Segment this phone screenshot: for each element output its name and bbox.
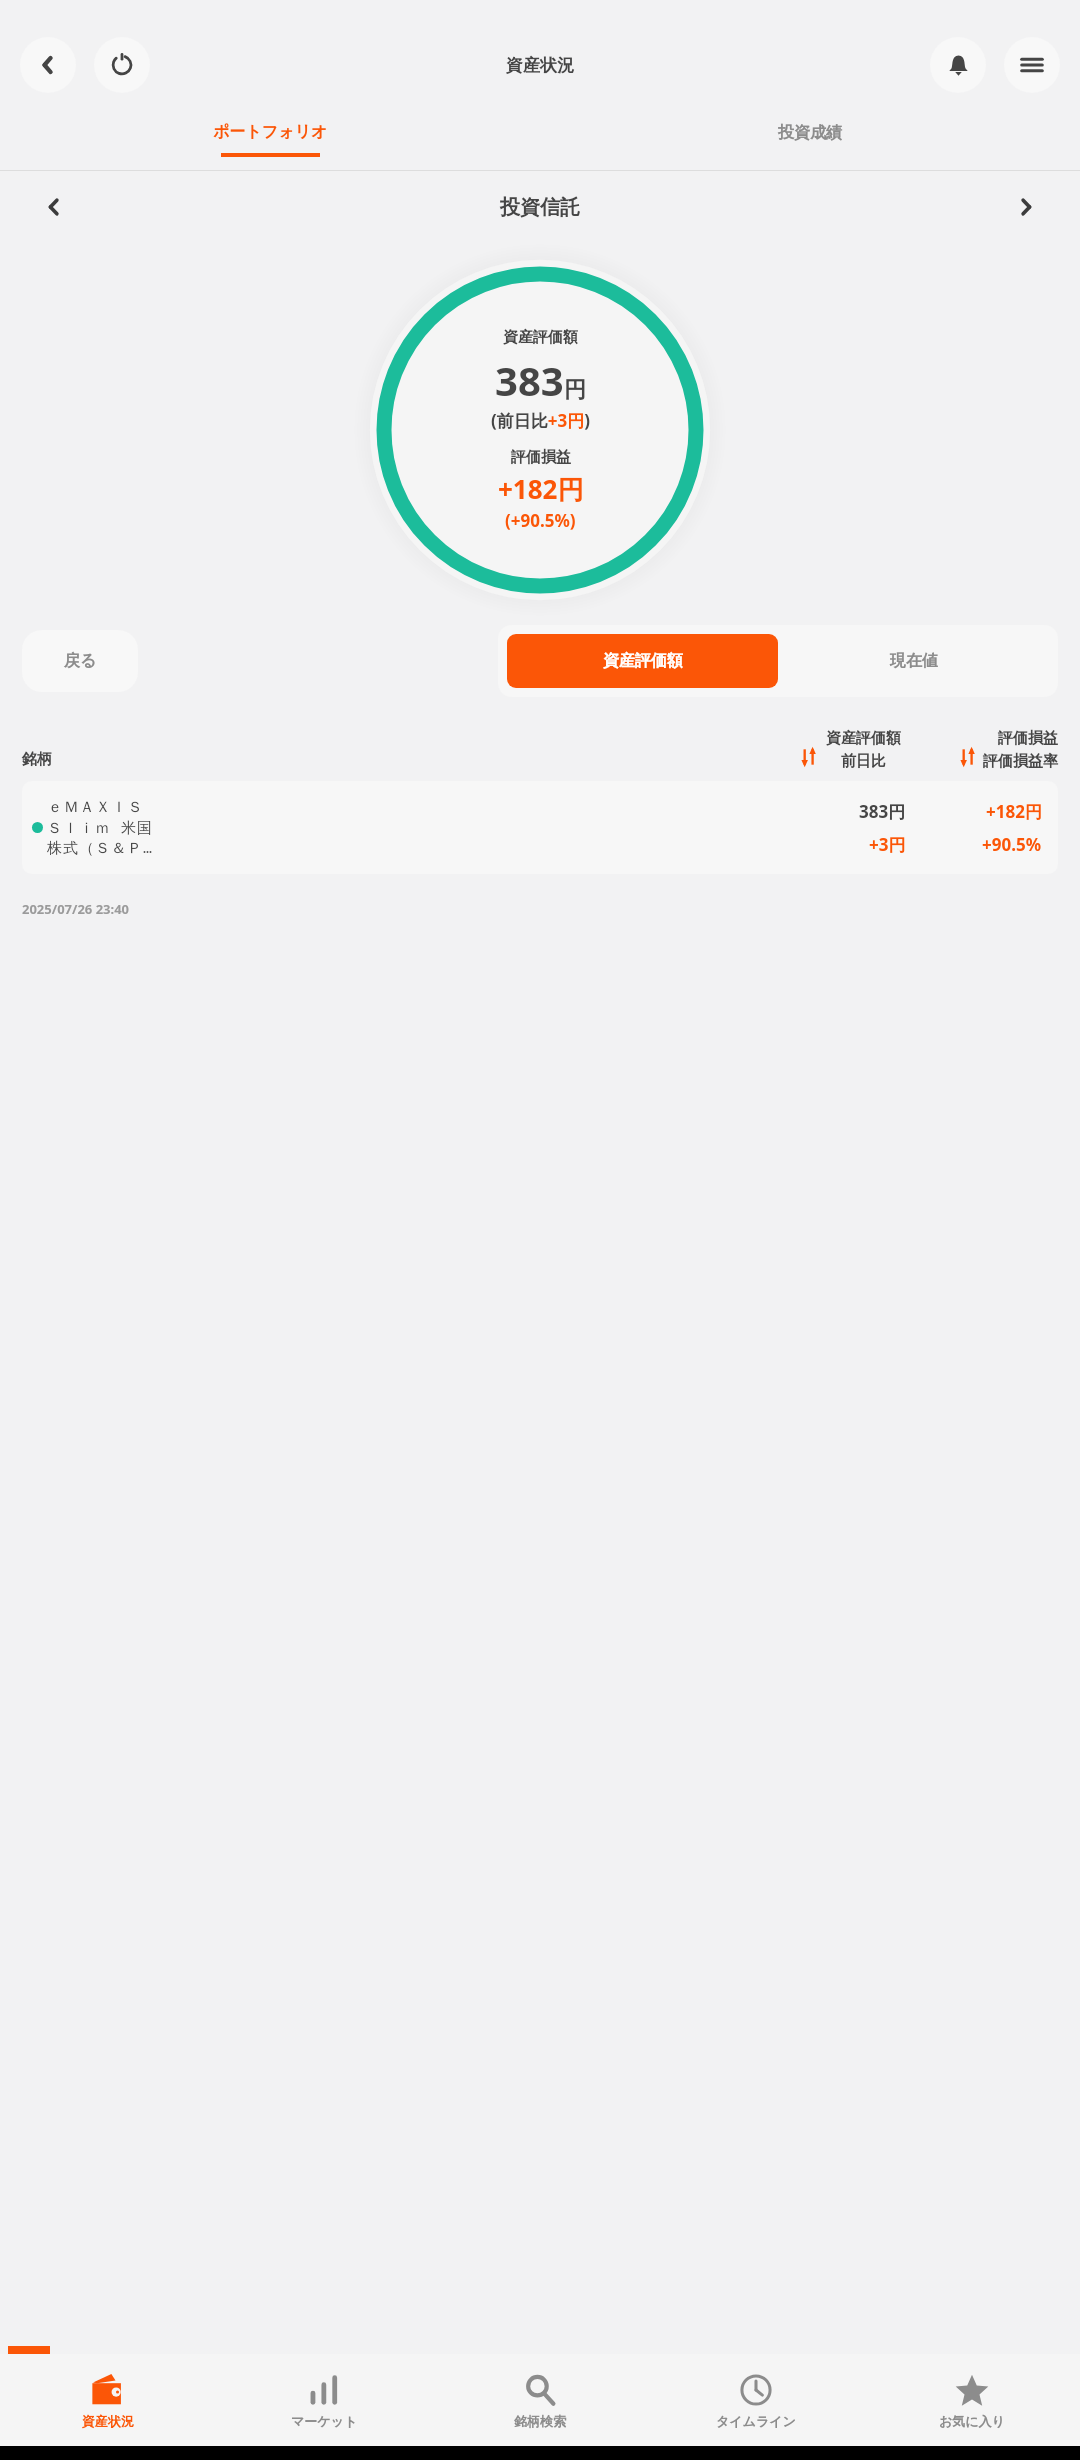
staticText: 資産評価額: [503, 328, 578, 347]
staticText: 戻る: [64, 651, 97, 671]
button[interactable]: Notifications: [930, 37, 986, 93]
button[interactable]: Refresh: [94, 37, 150, 93]
staticText: (前日比+3円): [491, 409, 590, 432]
staticText: 2025/07/26 23:40: [22, 900, 130, 918]
button[interactable]: お気に入り: [864, 2354, 1080, 2446]
staticText: 383: [495, 353, 564, 407]
staticText: (+90.5%): [505, 509, 576, 532]
staticText: 評価損益率: [983, 752, 1058, 771]
button[interactable]: 投資成績: [540, 108, 1080, 170]
button[interactable]: 資産状況: [0, 2354, 216, 2446]
button[interactable]: Sort by valuation: [800, 745, 818, 769]
staticText: 銘柄検索: [514, 2413, 566, 2429]
staticText: +182円: [986, 800, 1042, 823]
staticText: マーケット: [291, 2413, 358, 2429]
staticText: 評価損益: [998, 729, 1058, 748]
button[interactable]: 資産評価額: [507, 634, 778, 688]
staticText: ｅＭＡＸＩＳ: [47, 798, 143, 817]
staticText: お気に入り: [939, 2413, 1005, 2429]
staticText: +182円: [498, 471, 584, 507]
button[interactable]: Previous: [34, 187, 74, 227]
staticText: 前日比: [841, 752, 886, 771]
staticText: 資産評価額: [826, 729, 901, 748]
staticText: 投資信託: [500, 195, 580, 220]
button[interactable]: ポートフォリオ: [0, 108, 540, 170]
button[interactable]: 戻る: [22, 630, 138, 692]
button[interactable]: ｅＭＡＸＩＳ: [22, 781, 1058, 874]
staticText: 資産評価額: [603, 651, 683, 671]
staticText: 銘柄: [22, 750, 52, 769]
staticText: 383円: [859, 800, 906, 823]
staticText: 資産状況: [82, 2413, 134, 2429]
button[interactable]: タイムライン: [648, 2354, 864, 2446]
staticText: ポートフォリオ: [213, 122, 328, 142]
button[interactable]: Back: [20, 37, 76, 93]
staticText: +90.5%: [982, 833, 1042, 856]
staticText: +3円: [869, 833, 906, 856]
button[interactable]: マーケット: [216, 2354, 432, 2446]
staticText: 投資成績: [778, 123, 842, 143]
button[interactable]: 現在値: [778, 634, 1049, 688]
button[interactable]: 銘柄検索: [432, 2354, 648, 2446]
staticText: 円: [564, 376, 586, 404]
staticText: 資産状況: [506, 55, 574, 76]
button[interactable]: Sort by profit: [959, 745, 977, 769]
staticText: 株式（Ｓ＆Ｐ…: [47, 837, 154, 857]
staticText: 現在値: [890, 651, 938, 671]
button[interactable]: Next: [1006, 187, 1046, 227]
staticText: タイムライン: [716, 2413, 796, 2429]
staticText: 評価損益: [511, 448, 571, 467]
button[interactable]: Menu: [1004, 37, 1060, 93]
staticText: Ｓｌｉｍ 米国: [47, 817, 154, 837]
